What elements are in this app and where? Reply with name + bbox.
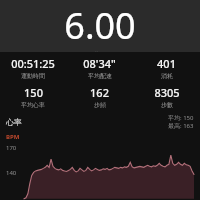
button[interactable]: Heart rate chart <box>0 141 200 200</box>
button[interactable]: 162 <box>66 85 133 109</box>
staticText: 平均: 150 <box>168 114 194 122</box>
button[interactable]: 401 <box>133 56 200 80</box>
staticText: 170 <box>6 144 17 152</box>
staticText: 8305 <box>154 85 180 100</box>
staticText: 08'34" <box>83 56 116 71</box>
button[interactable]: 心率 <box>6 114 194 130</box>
staticText: 公里 <box>93 50 107 52</box>
staticText: 心率 <box>6 117 22 127</box>
button[interactable]: 08'34" <box>66 56 133 80</box>
staticText: 162 <box>90 85 109 100</box>
button[interactable]: 8305 <box>133 85 200 109</box>
staticText: 150 <box>24 85 43 100</box>
button[interactable]: 00:51:25 <box>0 56 66 80</box>
staticText: 步數 <box>161 101 173 109</box>
staticText: 6.00 <box>64 1 136 50</box>
button[interactable]: 6.00 <box>0 0 200 52</box>
staticText: 140 <box>6 169 17 177</box>
staticText: 平均配速 <box>88 72 112 80</box>
staticText: BPM <box>6 133 20 141</box>
button[interactable]: 150 <box>0 85 66 109</box>
staticText: 消耗 <box>161 72 173 80</box>
staticText: 運動時間 <box>21 72 45 80</box>
staticText: 00:51:25 <box>11 56 55 71</box>
staticText: 步頻 <box>94 101 106 109</box>
staticText: 最高: 163 <box>168 122 194 130</box>
staticText: 平均心率 <box>21 101 45 109</box>
staticText: 401 <box>157 56 176 71</box>
